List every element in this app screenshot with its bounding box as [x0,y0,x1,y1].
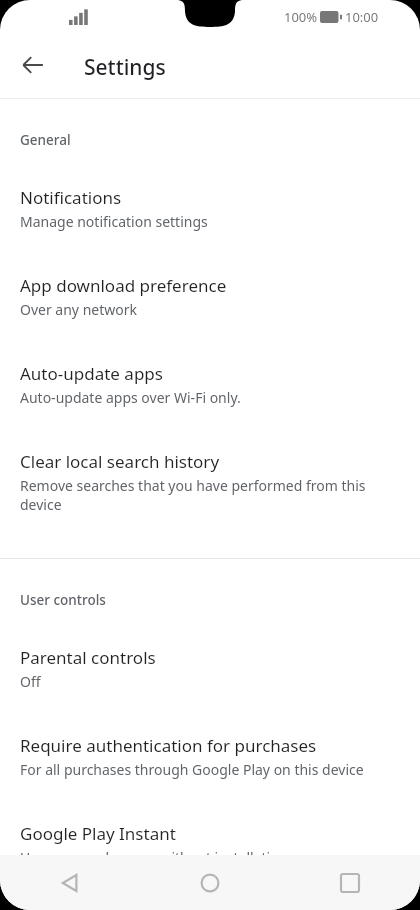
staticText: 100% [284,8,318,26]
staticText: General [20,131,71,149]
staticText: For all purchases through Google Play on… [20,760,364,779]
staticText: Auto-update apps [20,362,163,385]
staticText: Settings [84,53,166,82]
button[interactable]: Google Play Instant [0,779,420,855]
staticText: Remove searches that you have performed … [20,476,400,514]
staticText: Manage notification settings [20,212,208,231]
staticText: User controls [20,591,106,609]
staticText: Over any network [20,300,137,319]
staticText: Parental controls [20,646,156,669]
button[interactable]: Require authentication for purchases [0,691,420,779]
button[interactable]: Parental controls [0,609,420,691]
button[interactable]: Notifications [0,149,420,231]
button[interactable]: Back [9,41,57,89]
staticText: Use apps and games without installation [20,848,288,855]
button[interactable]: Auto-update apps [0,319,420,407]
button[interactable]: App download preference [0,231,420,319]
staticText: Require authentication for purchases [20,734,317,757]
button[interactable]: Back [0,855,140,910]
staticText: Clear local search history [20,450,220,473]
staticText: Notifications [20,186,122,209]
button[interactable]: Clear local search history [0,407,420,514]
staticText: Off [20,672,41,691]
button[interactable]: Recent apps [280,855,420,910]
staticText: Auto-update apps over Wi-Fi only. [20,388,241,407]
staticText: App download preference [20,274,227,297]
button[interactable]: Home [140,855,280,910]
staticText: 10:00 [345,8,379,26]
staticText: Google Play Instant [20,822,176,845]
